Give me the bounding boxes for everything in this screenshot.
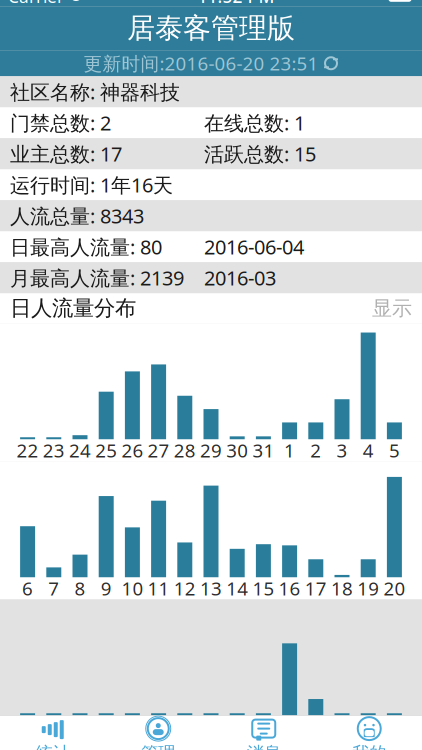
- staticText: 5: [389, 438, 400, 463]
- button[interactable]: 刷新: [0, 50, 422, 76]
- button[interactable]: 日人流量分布: [0, 293, 422, 323]
- staticText: 统计: [36, 743, 70, 750]
- staticText: 活跃总数: 15: [204, 140, 316, 167]
- staticText: 运行时间: 1年16天: [10, 171, 173, 198]
- staticText: 26: [121, 438, 143, 463]
- staticText: 9: [101, 576, 112, 601]
- staticText: 人流总量: 8343: [10, 202, 144, 229]
- staticText: 10: [121, 576, 143, 601]
- staticText: 25: [95, 438, 117, 463]
- staticText: 19: [357, 576, 379, 601]
- staticText: 1: [284, 438, 295, 463]
- staticText: 显示: [372, 296, 412, 321]
- staticText: 20: [383, 576, 405, 601]
- staticText: 31: [252, 438, 274, 463]
- staticText: 2: [310, 438, 321, 463]
- staticText: 16: [279, 576, 301, 601]
- button[interactable]: 管理: [105, 716, 211, 750]
- staticText: 月最高人流量: 2139: [10, 264, 184, 291]
- staticText: 8: [74, 576, 85, 601]
- staticText: 2016-03: [204, 264, 276, 291]
- staticText: [64, 0, 69, 8]
- staticText: 12: [174, 576, 196, 601]
- staticText: 消息: [247, 743, 281, 750]
- staticText: 30: [226, 438, 248, 463]
- staticText: 29: [200, 438, 222, 463]
- staticText: 15: [252, 576, 274, 601]
- staticText: 门禁总数: 2: [10, 109, 111, 136]
- staticText: 28: [174, 438, 196, 463]
- staticText: Carrier: [8, 0, 64, 8]
- staticText: 3: [336, 438, 347, 463]
- staticText: 2016-06-04: [204, 233, 304, 260]
- staticText: 13: [200, 576, 222, 601]
- staticText: 17: [305, 576, 327, 601]
- staticText: 27: [148, 438, 170, 463]
- staticText: 日最高人流量: 80: [10, 233, 162, 260]
- staticText: 管理: [141, 743, 175, 750]
- staticText: 居泰客管理版: [127, 11, 295, 45]
- staticText: 在线总数: 1: [204, 109, 305, 136]
- staticText: 11: [148, 576, 170, 601]
- staticText: 更新时间:2016-06-20 23:51: [83, 51, 318, 76]
- staticText: 11:52 PM: [197, 0, 274, 8]
- staticText: 24: [69, 438, 91, 463]
- staticText: 18: [331, 576, 353, 601]
- staticText: 6: [22, 576, 33, 601]
- staticText: 社区名称: 神器科技: [10, 78, 180, 105]
- button[interactable]: 消息: [211, 716, 316, 750]
- button[interactable]: 统计: [0, 716, 105, 750]
- staticText: 22: [17, 438, 39, 463]
- staticText: 我的: [352, 743, 386, 750]
- staticText: 日人流量分布: [10, 295, 136, 321]
- staticText: 业主总数: 17: [10, 140, 122, 167]
- staticText: 23: [43, 438, 65, 463]
- staticText: 14: [226, 576, 248, 601]
- staticText: 4: [363, 438, 374, 463]
- staticText: 7: [48, 576, 59, 601]
- button[interactable]: 我的: [316, 716, 422, 750]
